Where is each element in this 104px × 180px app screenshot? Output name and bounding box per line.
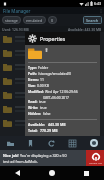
staticText: File Manager <box>3 8 31 14</box>
button[interactable] <box>0 46 104 60</box>
staticText: Path: <box>28 71 37 76</box>
staticText: Items: <box>28 77 39 82</box>
staticText: Properties <box>40 35 66 42</box>
staticText: Nice job! <box>3 153 20 158</box>
staticText: Used: 126.93 MB <box>2 27 29 32</box>
staticText: Google Ads <box>89 161 102 164</box>
button[interactable] <box>0 116 104 130</box>
staticText: Write: <box>28 105 39 110</box>
button[interactable]: More options <box>97 7 104 14</box>
button[interactable] <box>0 88 104 102</box>
button[interactable]: storage <box>2 16 21 24</box>
staticText: true <box>39 99 46 104</box>
staticText: Modified: <box>28 89 44 94</box>
staticText: 0 <box>51 18 54 23</box>
staticText: Available: <box>28 122 46 127</box>
staticText: emulated <box>26 18 43 23</box>
button[interactable] <box>0 102 104 116</box>
staticText: test ad from AdMob. <box>3 159 38 164</box>
staticText: GMT+06:00 2017 <box>43 95 69 99</box>
button[interactable]: Home <box>34 166 69 180</box>
button[interactable]: Home <box>0 136 20 150</box>
button[interactable]: Refresh <box>41 136 62 150</box>
staticText: 443.30 MB <box>48 122 66 127</box>
button[interactable]: Info <box>83 136 104 150</box>
staticText: Size: <box>28 83 36 88</box>
button[interactable]: Grid view <box>62 136 83 150</box>
button[interactable]: Search <box>83 16 102 24</box>
button[interactable] <box>0 32 104 46</box>
staticText: Wed Apr 12 06:29:56 <box>45 89 78 94</box>
staticText: 6:43 <box>94 1 102 6</box>
button[interactable]: emulated <box>23 16 46 24</box>
staticText: Folder <box>38 65 49 70</box>
staticText: Available: 443.30 MB <box>68 27 102 32</box>
staticText: false <box>43 111 51 116</box>
staticText: 770.29 MB <box>40 128 58 133</box>
button[interactable]: 0 <box>48 16 57 24</box>
staticText: Search <box>86 18 99 23</box>
button[interactable]: Recent apps <box>69 166 104 180</box>
staticText: 11 <box>40 77 44 82</box>
staticText: storage <box>5 18 18 23</box>
staticText: You're displaying a 320 x 50 <box>20 153 67 158</box>
staticText: Hidden: <box>28 111 42 116</box>
staticText: Total: <box>28 128 38 133</box>
button[interactable]: Bookmarks <box>20 136 41 150</box>
staticText: 0.00 KB <box>37 83 49 88</box>
button[interactable]: Back <box>0 166 34 180</box>
staticText: /storage/emulated/0 <box>38 71 72 76</box>
staticText: Read: <box>28 99 38 104</box>
staticText: true <box>40 105 47 110</box>
button[interactable]: Nice job! <box>0 150 104 166</box>
button[interactable] <box>0 74 104 88</box>
button[interactable] <box>0 60 104 74</box>
staticText: Type: <box>28 65 37 70</box>
